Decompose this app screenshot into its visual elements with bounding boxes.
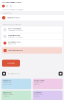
button[interactable]: Design sync (1, 79, 31, 89)
staticText: Team call (3, 95, 9, 97)
button[interactable]: Daily standup (1, 91, 31, 100)
staticText: Owner only (8, 43, 16, 45)
button[interactable]: Everyone at Studio (1, 26, 63, 33)
button[interactable]: Send invites (2, 60, 20, 67)
staticText: 12 members can edit (8, 30, 22, 31)
staticText: Everyone at Studio (8, 28, 21, 30)
staticText: Sprint retro (34, 92, 42, 94)
button[interactable]: Restricted access (1, 40, 63, 46)
button[interactable]: List view (2, 72, 6, 76)
staticText: Tomorrow · 9:30 (3, 94, 14, 95)
staticText: Link expires in 7 days (8, 50, 23, 51)
staticText: With Anna (34, 83, 40, 85)
staticText: Share this note with your team (2, 2, 21, 3)
staticText: Design sync (3, 80, 12, 82)
staticText: Daily standup (3, 92, 12, 94)
staticText: WHO CAN ACCESS THIS NOTE (2, 24, 21, 25)
staticText: Anyone you invite can comment (2, 9, 23, 11)
button[interactable]: Sprint retro (33, 91, 63, 100)
staticText: Design review (34, 80, 44, 82)
staticText: Restricted access (8, 41, 21, 43)
staticText: Studio Workspace (7, 17, 20, 19)
button[interactable]: Only invited people (1, 33, 63, 40)
staticText: SUGGESTED (2, 12, 11, 14)
button[interactable]: Link expires in 7 days (2, 47, 62, 54)
staticText: Recently shared (8, 73, 20, 75)
staticText: Today · 10:00 (3, 82, 12, 83)
staticText: Friday · 16:00 (34, 94, 43, 95)
staticText: 3 members can view (8, 36, 22, 38)
staticText: All hands (34, 95, 40, 97)
staticText: Send invites (7, 62, 15, 64)
button[interactable]: Design review (33, 79, 63, 89)
staticText: Only invited people (8, 35, 20, 36)
staticText: Figma review (3, 83, 12, 85)
button[interactable]: Studio Workspace (0, 15, 64, 20)
button[interactable]: Grid view (59, 72, 63, 76)
staticText: Friday · 14:00 (34, 82, 43, 83)
